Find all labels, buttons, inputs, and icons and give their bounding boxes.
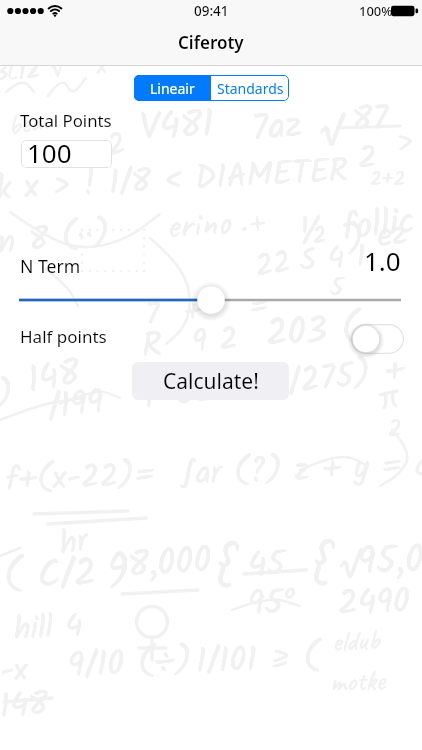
- staticText: Total Points: [20, 109, 112, 132]
- staticText: 09:41: [194, 2, 229, 20]
- staticText: Calculate!: [163, 367, 259, 396]
- button[interactable]: Standards: [211, 75, 289, 101]
- button[interactable]: Lineair: [134, 75, 211, 101]
- staticText: Half points: [20, 325, 107, 348]
- staticText: 1.0: [364, 243, 401, 278]
- staticText: 100%: [359, 2, 393, 20]
- button[interactable]: 100: [21, 140, 112, 168]
- staticText: 100: [27, 140, 72, 163]
- button[interactable]: N Term slider: [0, 282, 422, 318]
- button[interactable]: Half points toggle: [351, 324, 404, 354]
- staticText: N Term: [20, 254, 81, 278]
- staticText: Standards: [217, 79, 284, 98]
- button[interactable]: Calculate!: [132, 362, 289, 400]
- staticText: Ciferoty: [178, 31, 244, 54]
- staticText: Lineair: [150, 79, 195, 98]
